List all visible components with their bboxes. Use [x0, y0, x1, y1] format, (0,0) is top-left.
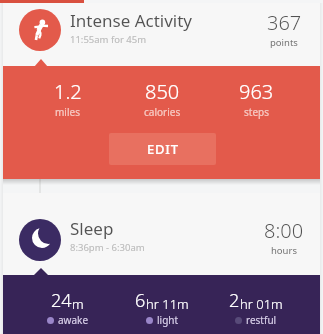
button[interactable]: Intense Activity: [19, 9, 61, 51]
staticText: 8:00: [264, 217, 304, 244]
staticText: 1.2: [54, 78, 82, 105]
staticText: hours: [271, 244, 297, 257]
staticText: light: [157, 313, 179, 327]
staticText: Intense Activity: [70, 9, 193, 32]
staticText: hr 11m: [146, 295, 189, 313]
staticText: restful: [246, 313, 277, 327]
staticText: EDIT: [147, 140, 179, 158]
staticText: 11:55am for 45m: [70, 33, 147, 46]
staticText: miles: [55, 105, 80, 119]
staticText: 963: [239, 78, 274, 105]
button[interactable]: EDIT: [109, 133, 216, 165]
staticText: steps: [244, 105, 269, 119]
staticText: 850: [145, 78, 180, 105]
staticText: m: [72, 295, 84, 313]
staticText: 2: [229, 288, 240, 313]
staticText: Sleep: [70, 217, 114, 240]
staticText: calories: [144, 105, 181, 119]
staticText: 8:36pm - 6:30am: [70, 241, 145, 254]
button[interactable]: Sleep: [3, 193, 320, 275]
button[interactable]: Sleep: [19, 219, 61, 261]
staticText: points: [270, 36, 298, 49]
staticText: 6: [135, 288, 146, 313]
staticText: 367: [267, 9, 302, 36]
button[interactable]: Intense Activity: [3, 3, 320, 66]
staticText: 24: [51, 288, 72, 313]
staticText: hr 01m: [240, 295, 283, 313]
staticText: awake: [58, 313, 89, 327]
